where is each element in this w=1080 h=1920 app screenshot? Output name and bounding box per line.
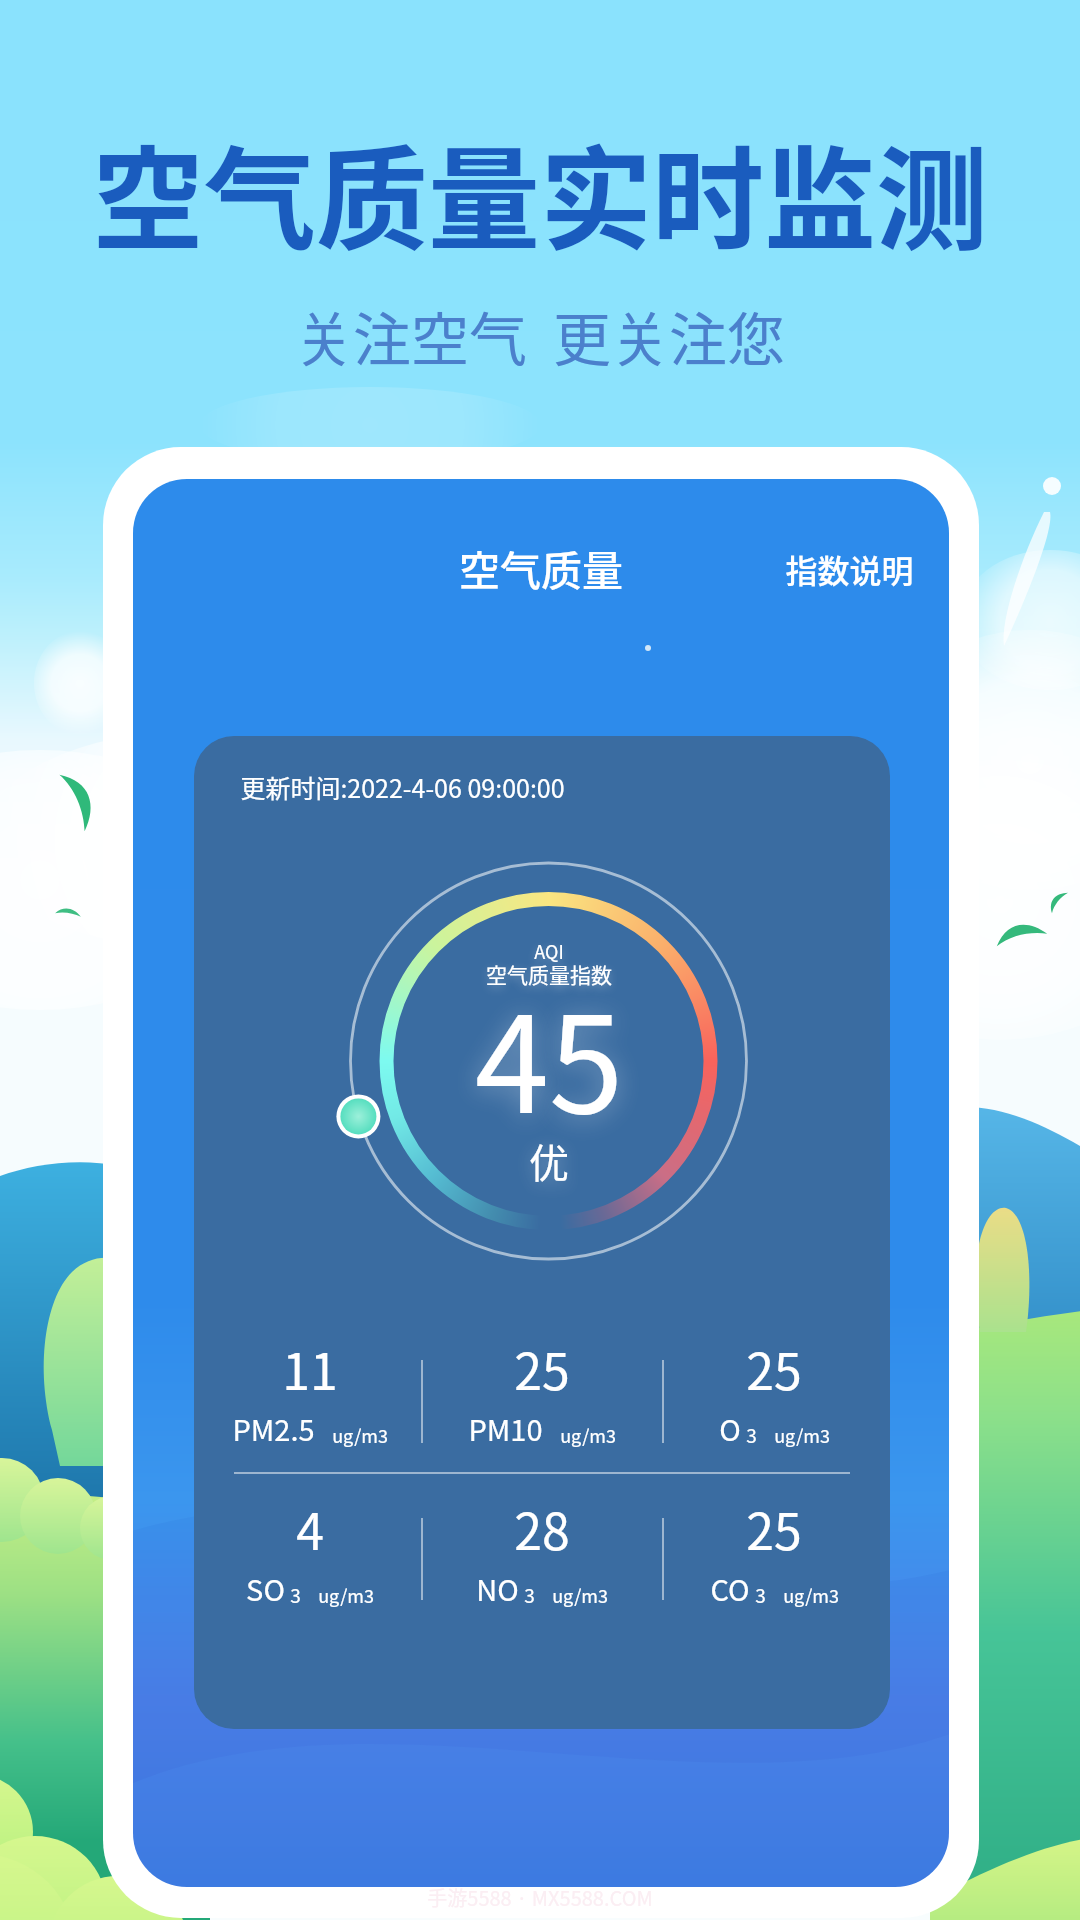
button[interactable]: PM10 25 ug/m3 xyxy=(434,1326,658,1466)
button[interactable]: PM2.5 11 ug/m3 xyxy=(202,1326,426,1466)
staticText: O xyxy=(719,1407,741,1449)
staticText: 45 xyxy=(201,958,890,1152)
staticText: 指数说明 xyxy=(785,546,914,592)
staticText: 手游5588 · MX5588.COM xyxy=(427,1883,653,1912)
staticText: AQI xyxy=(201,938,890,964)
staticText: 空气质量实时监测 xyxy=(92,111,988,273)
staticText: 优 xyxy=(201,1132,890,1190)
staticText: ug/m3 xyxy=(783,1582,839,1608)
staticText: ug/m3 xyxy=(318,1582,374,1608)
staticText: ug/m3 xyxy=(560,1422,616,1448)
staticText: 4 xyxy=(194,1492,426,1564)
staticText: 更新时间:2022-4-06 09:00:00 xyxy=(240,769,565,805)
staticText: CO xyxy=(710,1567,750,1609)
staticText: 28 xyxy=(426,1492,658,1564)
button[interactable]: CO3 25 ug/m3 xyxy=(666,1486,890,1626)
staticText: NO xyxy=(476,1567,519,1609)
staticText: 关注空气 更关注您 xyxy=(295,294,785,378)
staticText: PM10 xyxy=(468,1407,543,1449)
staticText: PM2.5 xyxy=(232,1407,315,1449)
staticText: 11 xyxy=(194,1332,426,1404)
staticText: SO xyxy=(246,1567,285,1609)
staticText: 空气质量指数 xyxy=(201,959,890,989)
button[interactable]: 指数说明 xyxy=(773,534,926,604)
staticText: 25 xyxy=(426,1332,658,1404)
button[interactable]: SO3 4 ug/m3 xyxy=(202,1486,426,1626)
staticText: 3 xyxy=(755,1581,766,1609)
staticText: ug/m3 xyxy=(332,1422,388,1448)
staticText: ug/m3 xyxy=(552,1582,608,1608)
staticText: 3 xyxy=(746,1421,757,1449)
staticText: 3 xyxy=(290,1581,301,1609)
button[interactable]: NO3 28 ug/m3 xyxy=(434,1486,658,1626)
staticText: 空气质量 xyxy=(459,538,623,597)
staticText: 3 xyxy=(524,1581,535,1609)
button[interactable]: 空气质量 xyxy=(447,526,635,609)
button[interactable]: O3 25 ug/m3 xyxy=(666,1326,890,1466)
staticText: 25 xyxy=(658,1332,890,1404)
staticText: ug/m3 xyxy=(774,1422,830,1448)
staticText: 25 xyxy=(658,1492,890,1564)
